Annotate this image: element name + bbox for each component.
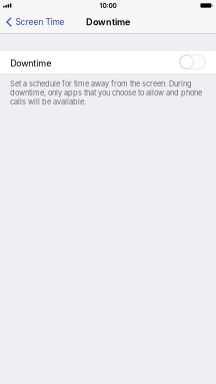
staticText: 10:00 [99, 1, 116, 9]
button[interactable]: Screen Time [0, 11, 69, 33]
staticText: Downtime [86, 16, 130, 27]
staticText: Screen Time [15, 17, 64, 27]
button[interactable]: Downtime [0, 51, 216, 73]
staticText: Set a schedule for time away from the sc… [10, 79, 202, 106]
staticText: Downtime [10, 58, 51, 69]
